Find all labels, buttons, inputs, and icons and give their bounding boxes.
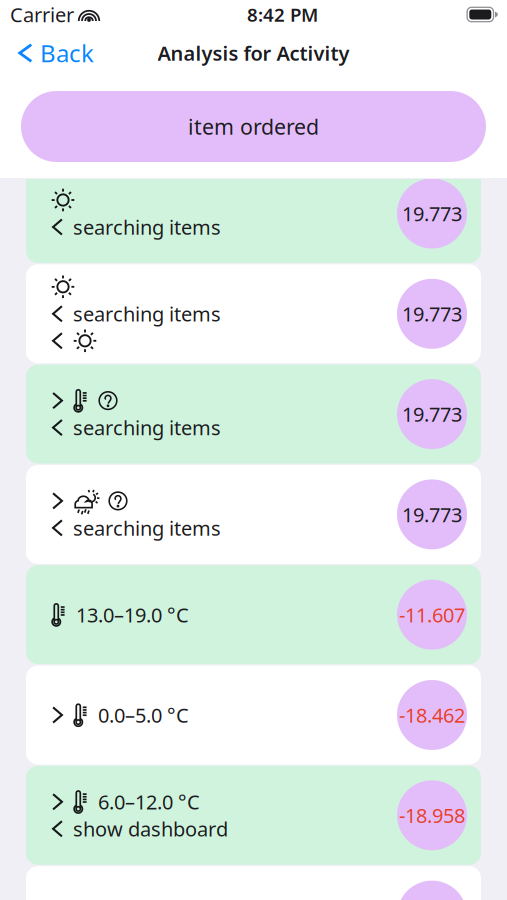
staticText: 19.773 [402,300,462,327]
staticText: 19.773 [402,401,462,427]
staticText: 13.0–19.0 °C [76,601,189,628]
staticText: 8:42 PM [247,2,318,27]
staticText: searching items [73,414,221,441]
staticText: Analysis for Activity [157,40,349,66]
button[interactable]: Back [14,30,97,76]
staticText: Carrier [10,1,74,28]
button[interactable]: 0.0–5.0 °C [26,665,481,764]
staticText: Back [40,37,94,69]
staticText: 0.0–5.0 °C [98,702,189,728]
staticText: 19.773 [402,200,462,227]
staticText: 6.0–12.0 °C [98,788,200,815]
staticText: item ordered [188,112,319,141]
button[interactable]: item ordered [21,91,486,162]
staticText: -18.958 [399,802,465,829]
button[interactable]: searching items [26,465,481,564]
staticText: searching items [73,515,221,541]
staticText: 19.773 [402,501,462,528]
button[interactable]: 13.0–19.0 °C [26,565,481,664]
staticText: searching items [73,300,221,327]
staticText: -11.607 [399,601,465,628]
staticText: show dashboard [73,815,228,842]
button[interactable]: 2.0–8.0 °C [26,866,481,900]
button[interactable]: searching items [26,365,481,464]
button[interactable]: searching items [26,264,481,363]
button[interactable]: searching items [26,164,481,263]
button[interactable]: 6.0–12.0 °C [26,766,481,865]
staticText: -18.462 [399,702,465,728]
staticText: searching items [73,214,221,240]
